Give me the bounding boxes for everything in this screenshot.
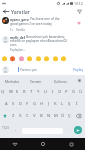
button[interactable]: P: [63, 86, 70, 98]
staticText: T: [30, 89, 33, 95]
button[interactable]: A: [3, 98, 10, 110]
button[interactable]: Paylaş: [72, 66, 85, 73]
staticText: melh_def: [10, 35, 25, 39]
button[interactable]: L: [59, 98, 66, 110]
button[interactable]: O: [56, 86, 63, 98]
staticText: good games I've seen today: [10, 22, 52, 26]
staticText: S: [12, 101, 15, 107]
staticText: G: [33, 101, 37, 107]
button[interactable]: H: [38, 98, 45, 110]
staticText: A: [5, 101, 8, 107]
button[interactable]: Backspace: [73, 110, 84, 122]
button[interactable]: ?123: [1, 125, 10, 131]
staticText: L: [61, 101, 64, 107]
staticText: ?123: [2, 126, 9, 130]
button[interactable]: Ğ: [70, 86, 77, 98]
staticText: Ö: [61, 113, 65, 119]
staticText: Ğ: [72, 89, 76, 95]
button[interactable]: Back: [0, 7, 11, 16]
button[interactable]: J: [45, 98, 52, 110]
button[interactable]: E: [14, 86, 21, 98]
button[interactable]: .: [64, 125, 70, 131]
button[interactable]: Emoji: [18, 55, 25, 62]
button[interactable]: ,: [13, 125, 19, 131]
staticText: Ç: [68, 113, 71, 119]
button[interactable]: Paylaşılan...: [10, 48, 26, 52]
staticText: ,: [15, 126, 17, 131]
button[interactable]: Emoji: [35, 55, 42, 62]
staticText: Merhaba: [5, 79, 19, 83]
staticText: Q: [1, 89, 5, 95]
button[interactable]: D: [17, 98, 24, 110]
button[interactable]: T: [28, 86, 35, 98]
staticText: X: [19, 113, 22, 119]
staticText: Yanıtlar: [11, 8, 30, 15]
button[interactable]: Home: [29, 138, 57, 150]
staticText: D: [19, 101, 23, 107]
button[interactable]: F: [24, 98, 31, 110]
staticText: com: [10, 43, 17, 47]
staticText: Yanıtla: [16, 28, 25, 32]
button[interactable]: İ: [73, 98, 80, 110]
button[interactable]: Emoji: [43, 55, 50, 62]
button[interactable]: Profile photo: [2, 17, 9, 24]
button[interactable]: G: [31, 98, 38, 110]
staticText: 10:12: [74, 1, 83, 6]
staticText: O: [58, 89, 62, 95]
button[interactable]: X: [17, 110, 24, 122]
staticText: Kullanıcı: [54, 79, 67, 83]
staticText: Paylaş: [73, 67, 84, 72]
button[interactable]: I: [49, 86, 56, 98]
staticText: Y: [37, 89, 40, 95]
button[interactable]: Emoji: [60, 55, 67, 62]
staticText: P: [65, 89, 68, 95]
button[interactable]: Emoji: [9, 55, 16, 62]
button[interactable]: R: [21, 86, 28, 98]
staticText: Ü: [79, 89, 83, 95]
staticText: W: [9, 89, 13, 95]
button[interactable]: C: [24, 110, 31, 122]
staticText: V: [33, 113, 36, 119]
staticText: .: [66, 126, 68, 131]
staticText: You have one of the: [30, 17, 60, 21]
button[interactable]: B: [38, 110, 45, 122]
button[interactable]: Ç: [66, 110, 73, 122]
button[interactable]: Send: [74, 126, 82, 134]
button[interactable]: Kullanıcı: [48, 75, 72, 86]
button[interactable]: Filter: [73, 7, 85, 16]
staticText: J: [48, 101, 50, 107]
button[interactable]: W: [7, 86, 14, 98]
staticText: Yanıtını yaz: [20, 68, 37, 72]
button[interactable]: N: [45, 110, 52, 122]
button[interactable]: Like: [76, 20, 81, 25]
button[interactable]: K: [52, 98, 59, 110]
button[interactable]: Y: [35, 86, 42, 98]
button[interactable]: Z: [10, 110, 17, 122]
button[interactable]: V: [31, 110, 38, 122]
button[interactable]: Back: [0, 138, 29, 150]
button[interactable]: Q: [0, 86, 7, 98]
button[interactable]: Emoji: [26, 55, 33, 62]
button[interactable]: Shift: [0, 110, 10, 122]
staticText: Tamam: [30, 79, 42, 83]
button[interactable]: M: [52, 110, 59, 122]
staticText: F: [26, 101, 29, 107]
button[interactable]: U: [42, 86, 49, 98]
staticText: etkinlik ve paylaşım sitesiBonushovi02: [10, 39, 68, 43]
button[interactable]: Recents: [57, 138, 85, 150]
staticText: R: [23, 89, 26, 95]
button[interactable]: Yanıtla: [16, 28, 25, 32]
staticText: I: [52, 89, 54, 95]
staticText: Z: [12, 113, 15, 119]
button[interactable]: Emoji: [1, 55, 8, 62]
button[interactable]: S: [10, 98, 17, 110]
button[interactable]: Keyboard settings: [74, 75, 85, 86]
button[interactable]: Emoji: [52, 55, 59, 62]
button[interactable]: Ü: [77, 86, 84, 98]
button[interactable]: Merhaba: [0, 75, 24, 86]
staticText: C: [26, 113, 29, 119]
button[interactable]: Tamam: [24, 75, 48, 86]
button[interactable]: Ö: [59, 110, 66, 122]
button[interactable]: Ş: [66, 98, 73, 110]
